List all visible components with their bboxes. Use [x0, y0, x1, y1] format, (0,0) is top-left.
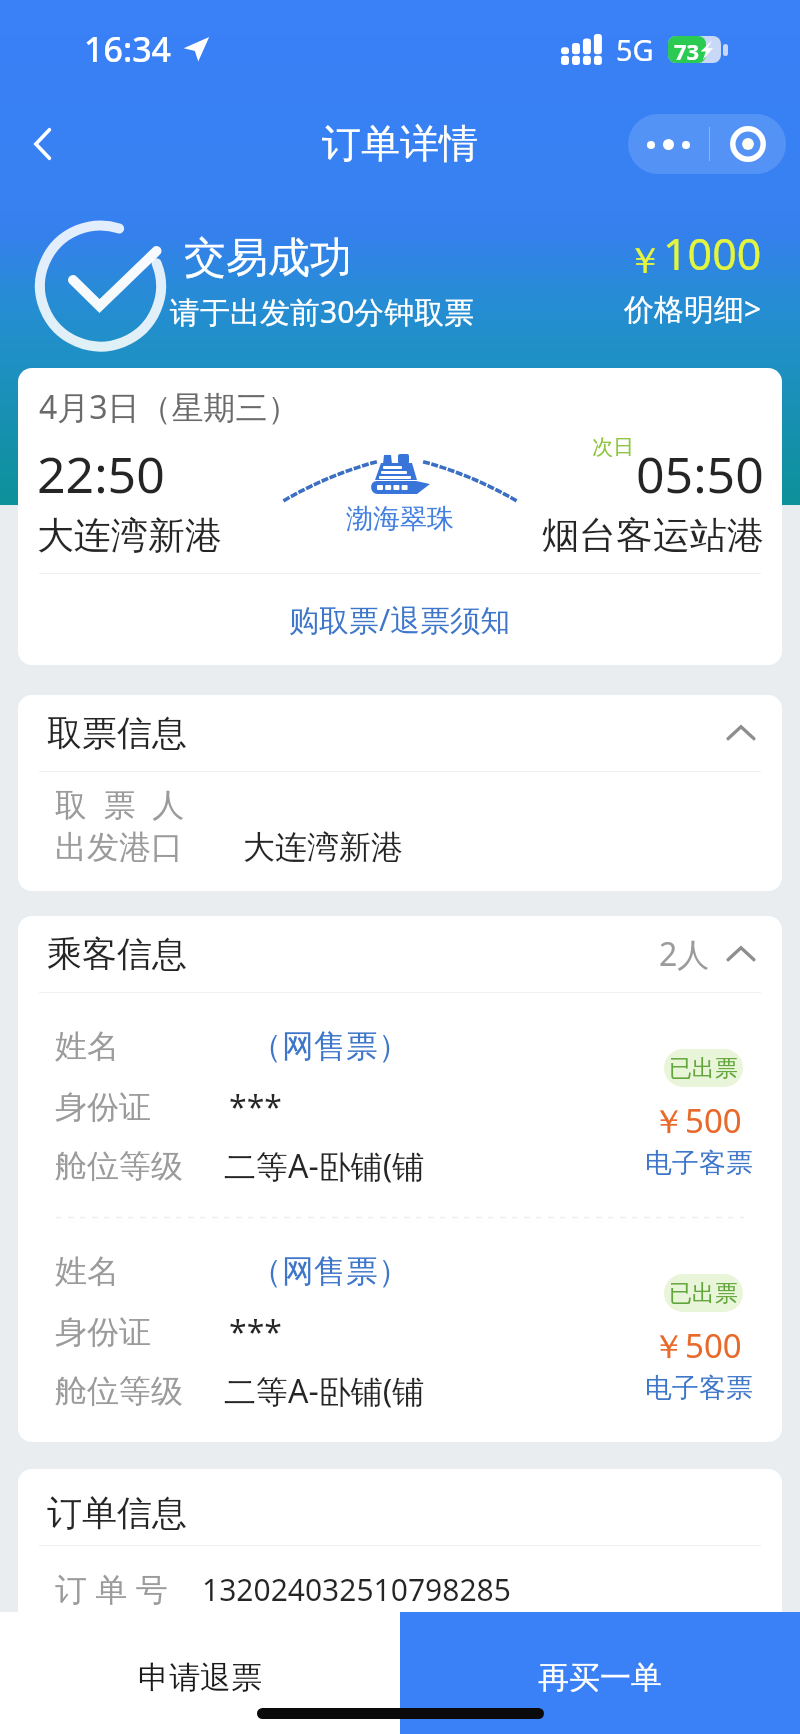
staticText: 05:50 — [636, 440, 764, 508]
button[interactable]: 再买一单 — [400, 1612, 800, 1734]
staticText: 电子客票 — [645, 1146, 753, 1180]
staticText: *** — [229, 1085, 282, 1129]
staticText: 5G — [616, 30, 654, 69]
button[interactable]: 乘客信息 — [47, 916, 754, 992]
staticText: 16:34 — [84, 26, 172, 72]
button[interactable]: 返回 — [14, 114, 74, 174]
staticText: 价格明细> — [624, 288, 762, 329]
staticText: 舱位等级 — [55, 1371, 183, 1411]
staticText: 姓名 — [55, 1026, 119, 1066]
staticText: 2人 — [659, 932, 710, 976]
staticText: 身份证 — [55, 1312, 151, 1352]
staticText: 出发港口 — [55, 827, 183, 867]
staticText: 1000 — [663, 224, 762, 283]
staticText: 订单信息 — [47, 1491, 187, 1535]
staticText: （网售票） — [250, 1251, 410, 1291]
staticText: 4月3日（星期三） — [39, 385, 300, 429]
staticText: 再买一单 — [538, 1658, 662, 1697]
staticText: ￥ — [627, 238, 663, 283]
staticText: 申请退票 — [138, 1658, 262, 1697]
button[interactable]: 购取票/退票须知 — [18, 574, 782, 665]
staticText: *** — [229, 1310, 282, 1354]
staticText: （网售票） — [250, 1026, 410, 1066]
staticText: 22:50 — [37, 440, 165, 508]
button[interactable]: 关闭 — [710, 114, 786, 174]
staticText: 已出票 — [669, 1054, 738, 1083]
staticText: 73 — [674, 36, 700, 63]
staticText: 电子客票 — [645, 1371, 753, 1405]
staticText: ￥500 — [652, 1098, 742, 1143]
staticText: 请于出发前30分钟取票 — [170, 291, 475, 332]
staticText: 二等A-卧铺(铺 — [224, 1144, 425, 1188]
staticText: 渤海翠珠 — [280, 502, 520, 536]
staticText: 舱位等级 — [55, 1146, 183, 1186]
staticText: 取票信息 — [47, 711, 187, 755]
staticText: 交易成功 — [184, 232, 352, 285]
staticText: 姓名 — [55, 1251, 119, 1291]
staticText: 大连湾新港 — [243, 827, 403, 867]
staticText: 订 单 号 — [55, 1567, 168, 1611]
staticText: 132024032510798285 — [202, 1569, 511, 1610]
staticText: 订单详情 — [322, 119, 478, 168]
button[interactable]: 更多 — [628, 114, 709, 174]
staticText: 购取票/退票须知 — [289, 599, 511, 640]
button[interactable]: 价格明细> — [624, 288, 762, 329]
button[interactable]: 电子客票 — [645, 1146, 753, 1180]
staticText: 身份证 — [55, 1087, 151, 1127]
staticText: ￥500 — [652, 1323, 742, 1368]
staticText: 取 票 人 — [55, 782, 185, 826]
staticText: 大连湾新港 — [37, 512, 222, 559]
button[interactable]: 申请退票 — [0, 1612, 400, 1734]
staticText: 次日 — [592, 434, 634, 460]
staticText: 已出票 — [669, 1279, 738, 1308]
staticText: 二等A-卧铺(铺 — [224, 1369, 425, 1413]
staticText: 乘客信息 — [47, 932, 187, 976]
button[interactable]: 电子客票 — [645, 1371, 753, 1405]
staticText: 烟台客运站港 — [542, 512, 764, 559]
button[interactable]: 取票信息 — [47, 695, 754, 771]
